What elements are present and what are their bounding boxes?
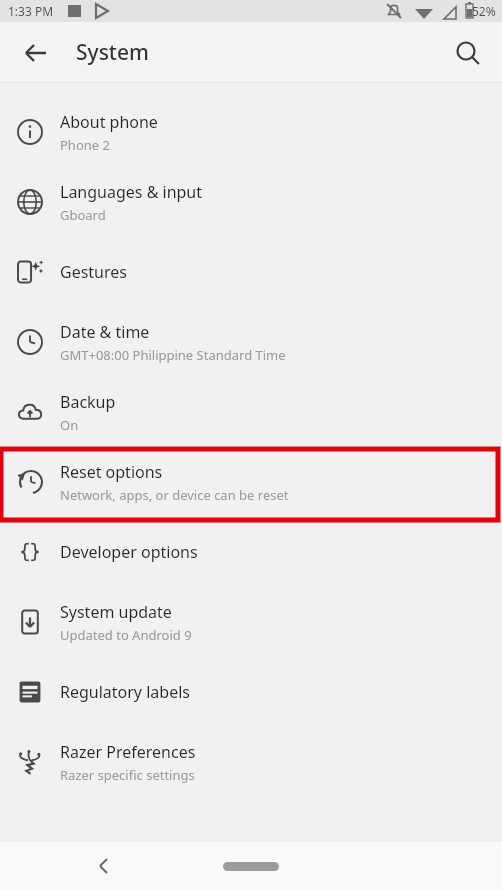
button[interactable]: Razer Preferences [0, 727, 502, 797]
staticText: 52% [472, 3, 496, 19]
staticText: System update [60, 601, 172, 623]
staticText: Phone 2 [60, 136, 110, 154]
button[interactable]: Backup [0, 377, 502, 447]
button[interactable]: Languages & input [0, 167, 502, 237]
staticText: Razer specific settings [60, 766, 195, 784]
button[interactable]: Gestures [0, 237, 502, 307]
staticText: Languages & input [60, 181, 203, 203]
button[interactable]: Developer options [0, 517, 502, 587]
button[interactable]: About phone [0, 97, 502, 167]
staticText: Razer Preferences [60, 741, 196, 763]
staticText: Backup [60, 391, 116, 413]
staticText: Gboard [60, 206, 106, 224]
button[interactable]: Back [12, 29, 60, 77]
button[interactable]: Search [444, 29, 492, 77]
staticText: Regulatory labels [60, 681, 190, 703]
staticText: GMT+08:00 Philippine Standard Time [60, 346, 286, 364]
staticText: About phone [60, 111, 158, 133]
button[interactable]: Regulatory labels [0, 657, 502, 727]
button[interactable]: System update [0, 587, 502, 657]
staticText: Date & time [60, 321, 150, 343]
staticText: On [60, 416, 79, 434]
button[interactable]: Reset options [0, 447, 502, 517]
staticText: 1:33 PM [8, 3, 54, 19]
staticText: Updated to Android 9 [60, 626, 192, 644]
button[interactable]: Back [80, 843, 126, 889]
staticText: Reset options [60, 461, 163, 483]
staticText: Gestures [60, 261, 127, 283]
button[interactable]: Home [223, 862, 279, 871]
staticText: Network, apps, or device can be reset [60, 486, 289, 504]
staticText: System [76, 38, 149, 67]
button[interactable]: Date & time [0, 307, 502, 377]
staticText: Developer options [60, 541, 198, 563]
